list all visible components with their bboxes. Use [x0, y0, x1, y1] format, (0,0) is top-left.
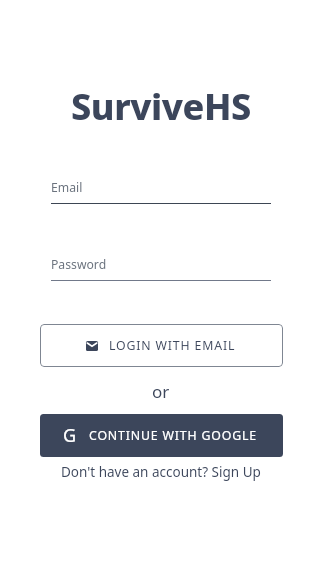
button[interactable]: Email	[51, 175, 271, 204]
staticText: CONTINUE WITH GOOGLE	[89, 427, 257, 444]
button[interactable]: G	[40, 414, 283, 457]
button[interactable]: Password	[51, 252, 271, 281]
staticText: Password	[51, 256, 107, 273]
staticText: SurviveHS	[71, 82, 251, 131]
staticText: G	[63, 423, 77, 448]
button[interactable]: Don't have an account? Sign Up	[55, 458, 267, 486]
staticText: Don't have an account? Sign Up	[61, 463, 261, 481]
button[interactable]: LOGIN WITH EMAIL	[40, 324, 283, 367]
staticText: or	[152, 380, 170, 403]
staticText: Email	[51, 179, 83, 196]
staticText: LOGIN WITH EMAIL	[109, 337, 236, 354]
